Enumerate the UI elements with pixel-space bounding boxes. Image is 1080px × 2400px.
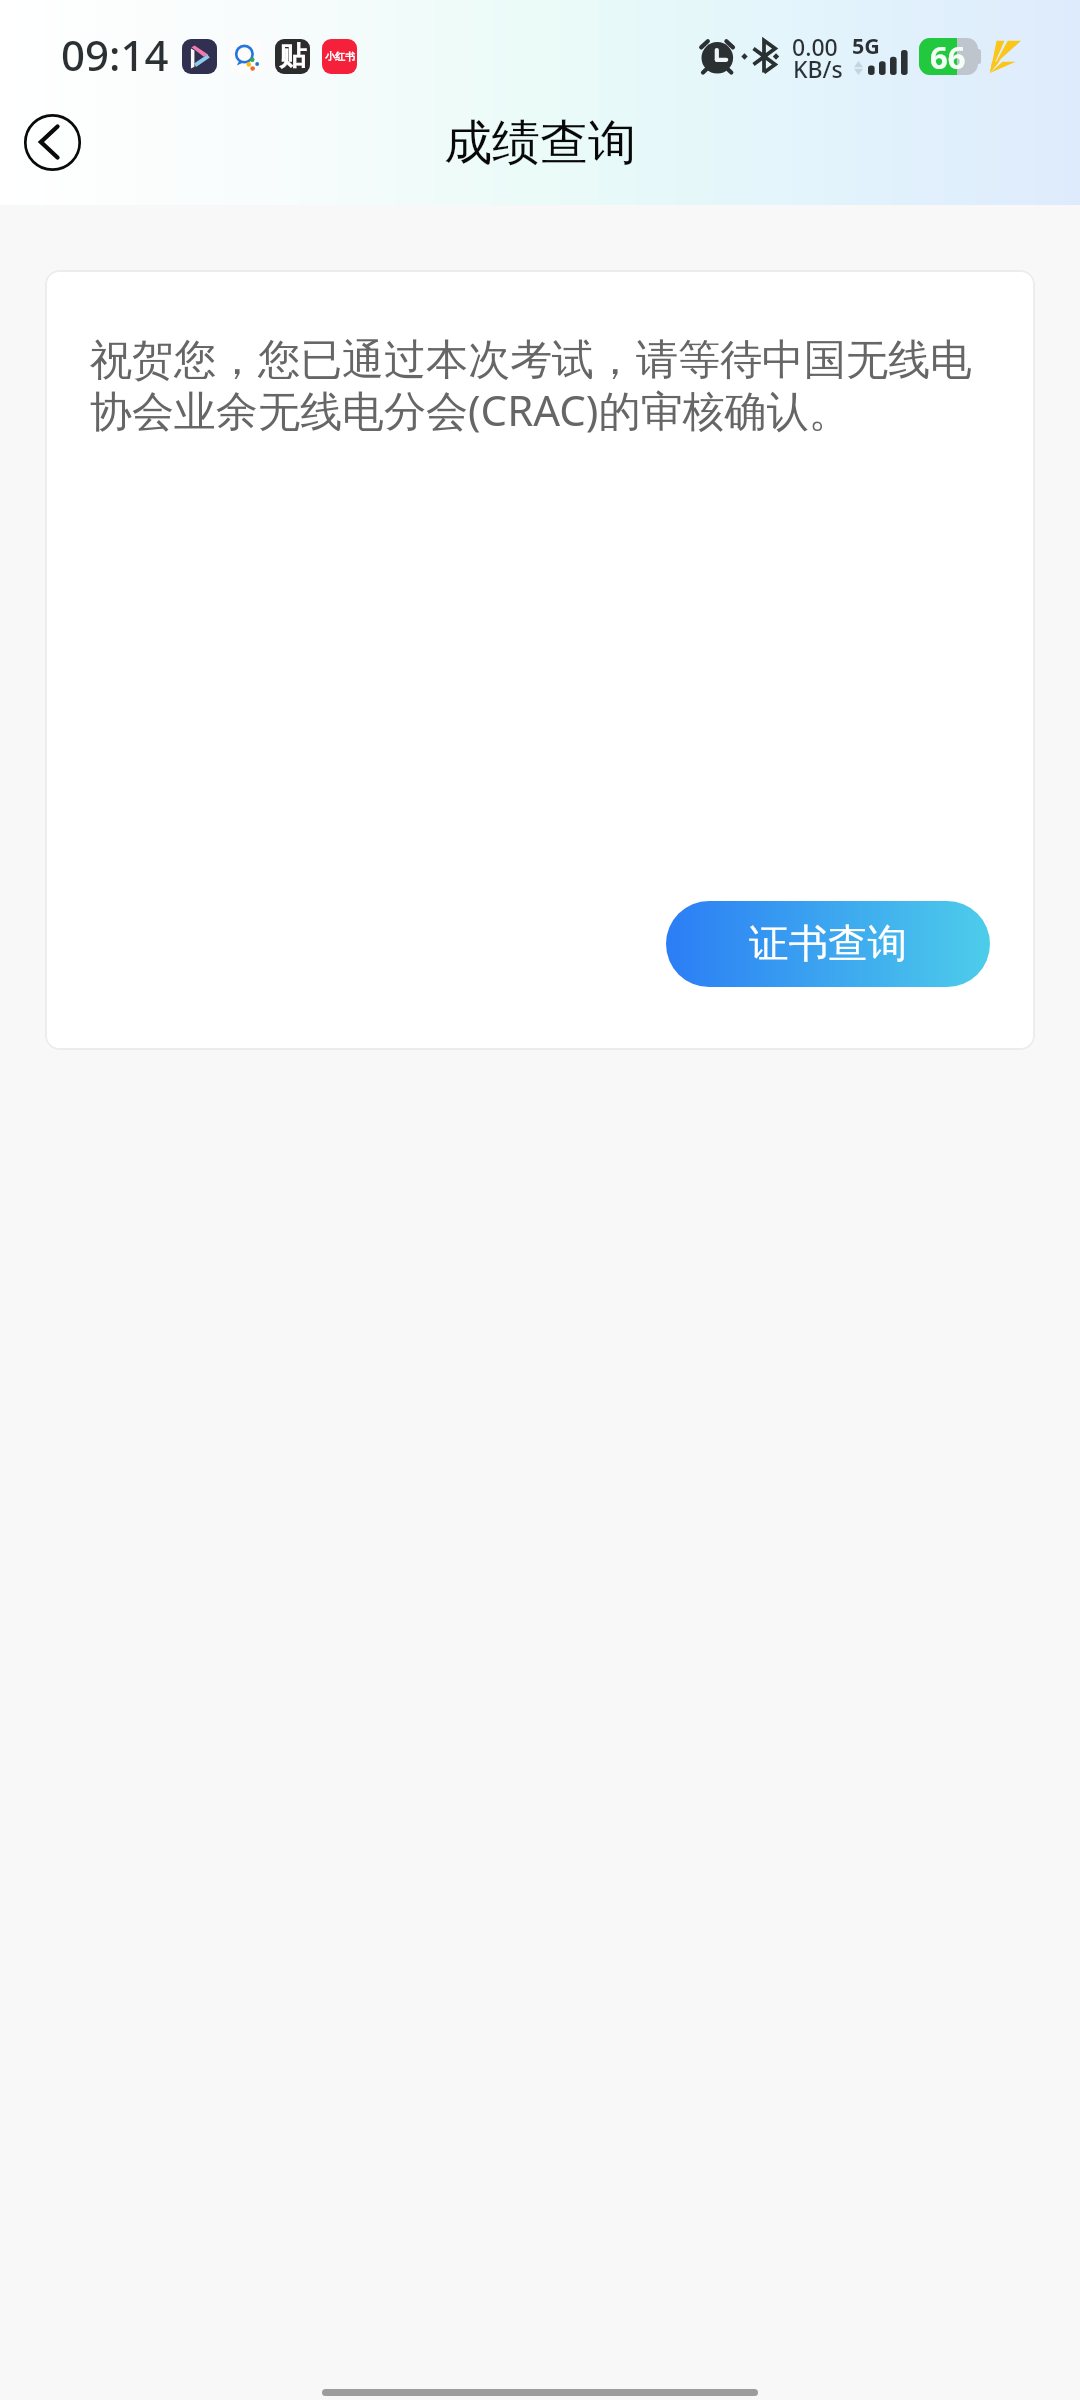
staticText: 证书查询: [749, 919, 907, 969]
staticText: 贴: [279, 39, 306, 73]
staticText: 小红书: [325, 50, 355, 63]
staticText: 祝贺您，您已通过本次考试，请等待中国无线电协会业余无线电分会(CRAC)的审核确…: [90, 334, 980, 439]
staticText: 成绩查询: [444, 113, 636, 173]
button[interactable]: 证书查询: [666, 901, 990, 987]
staticText: 0.00: [792, 31, 838, 62]
staticText: 09:14: [61, 26, 169, 83]
staticText: 5G: [852, 31, 880, 60]
staticText: 66: [930, 36, 966, 78]
button[interactable]: Back: [21, 111, 84, 174]
staticText: KB/s: [793, 53, 843, 84]
